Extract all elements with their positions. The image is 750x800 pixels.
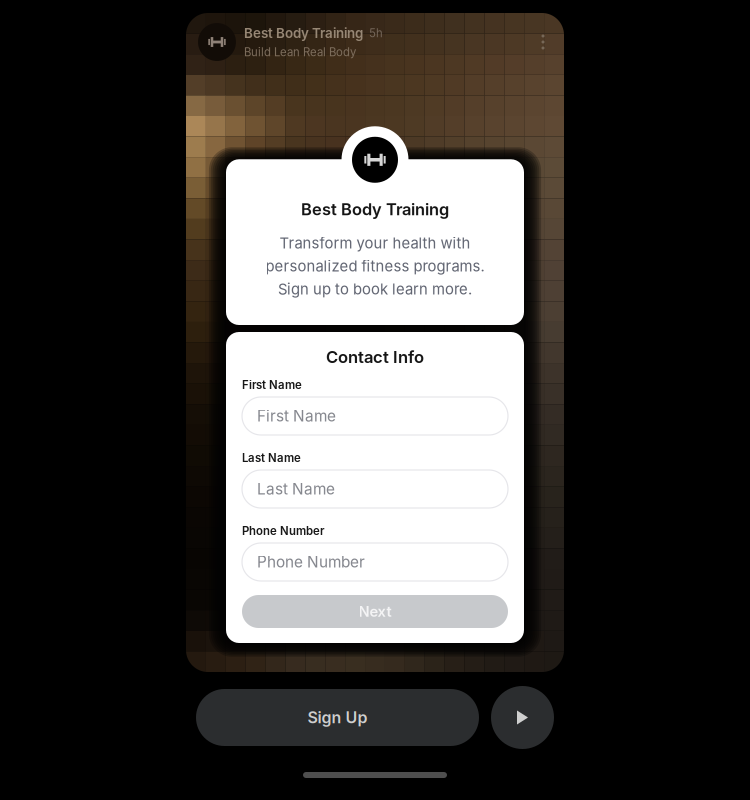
staticText: 5h: [369, 26, 383, 40]
staticText: Phone Number: [257, 553, 365, 571]
staticText: Next: [358, 603, 391, 620]
staticText: Last Name: [257, 480, 335, 498]
button[interactable]: Sign Up: [196, 689, 479, 746]
staticText: Phone Number: [242, 524, 324, 538]
staticText: Best Body Training: [301, 199, 449, 219]
staticText: First Name: [242, 378, 302, 392]
staticText: Sign Up: [307, 708, 367, 727]
staticText: personalized fitness programs.: [265, 257, 484, 275]
staticText: Sign up to book learn more.: [278, 280, 472, 298]
button[interactable]: Next: [242, 595, 508, 628]
staticText: Best Body Training: [244, 25, 363, 41]
button[interactable]: Best Body Training profile: [198, 23, 236, 61]
button[interactable]: Send: [491, 686, 554, 749]
staticText: Last Name: [242, 451, 301, 465]
staticText: Build Lean Real Body: [244, 45, 356, 59]
button[interactable]: More options: [534, 27, 552, 57]
staticText: First Name: [257, 407, 336, 425]
staticText: Transform your health with: [279, 234, 470, 252]
staticText: Contact Info: [326, 347, 424, 367]
